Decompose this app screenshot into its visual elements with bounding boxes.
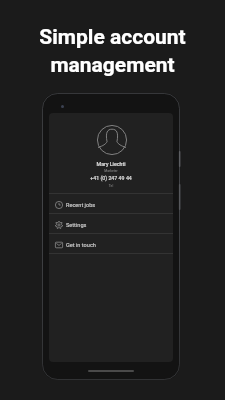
staticText: Simple account management — [0, 25, 225, 77]
staticText: +41 (0) 247 49 44 — [49, 175, 173, 181]
staticText: Marketer — [49, 169, 173, 173]
staticText: Recent jobs — [66, 202, 96, 209]
button[interactable]: Settings — [49, 214, 173, 234]
staticText: Mary Liechti — [49, 161, 173, 167]
staticText: Get in touch — [66, 242, 96, 249]
staticText: Tel — [49, 184, 173, 188]
staticText: Settings — [66, 222, 87, 229]
button[interactable]: Recent jobs — [49, 194, 173, 214]
button[interactable]: Get in touch — [49, 234, 173, 254]
